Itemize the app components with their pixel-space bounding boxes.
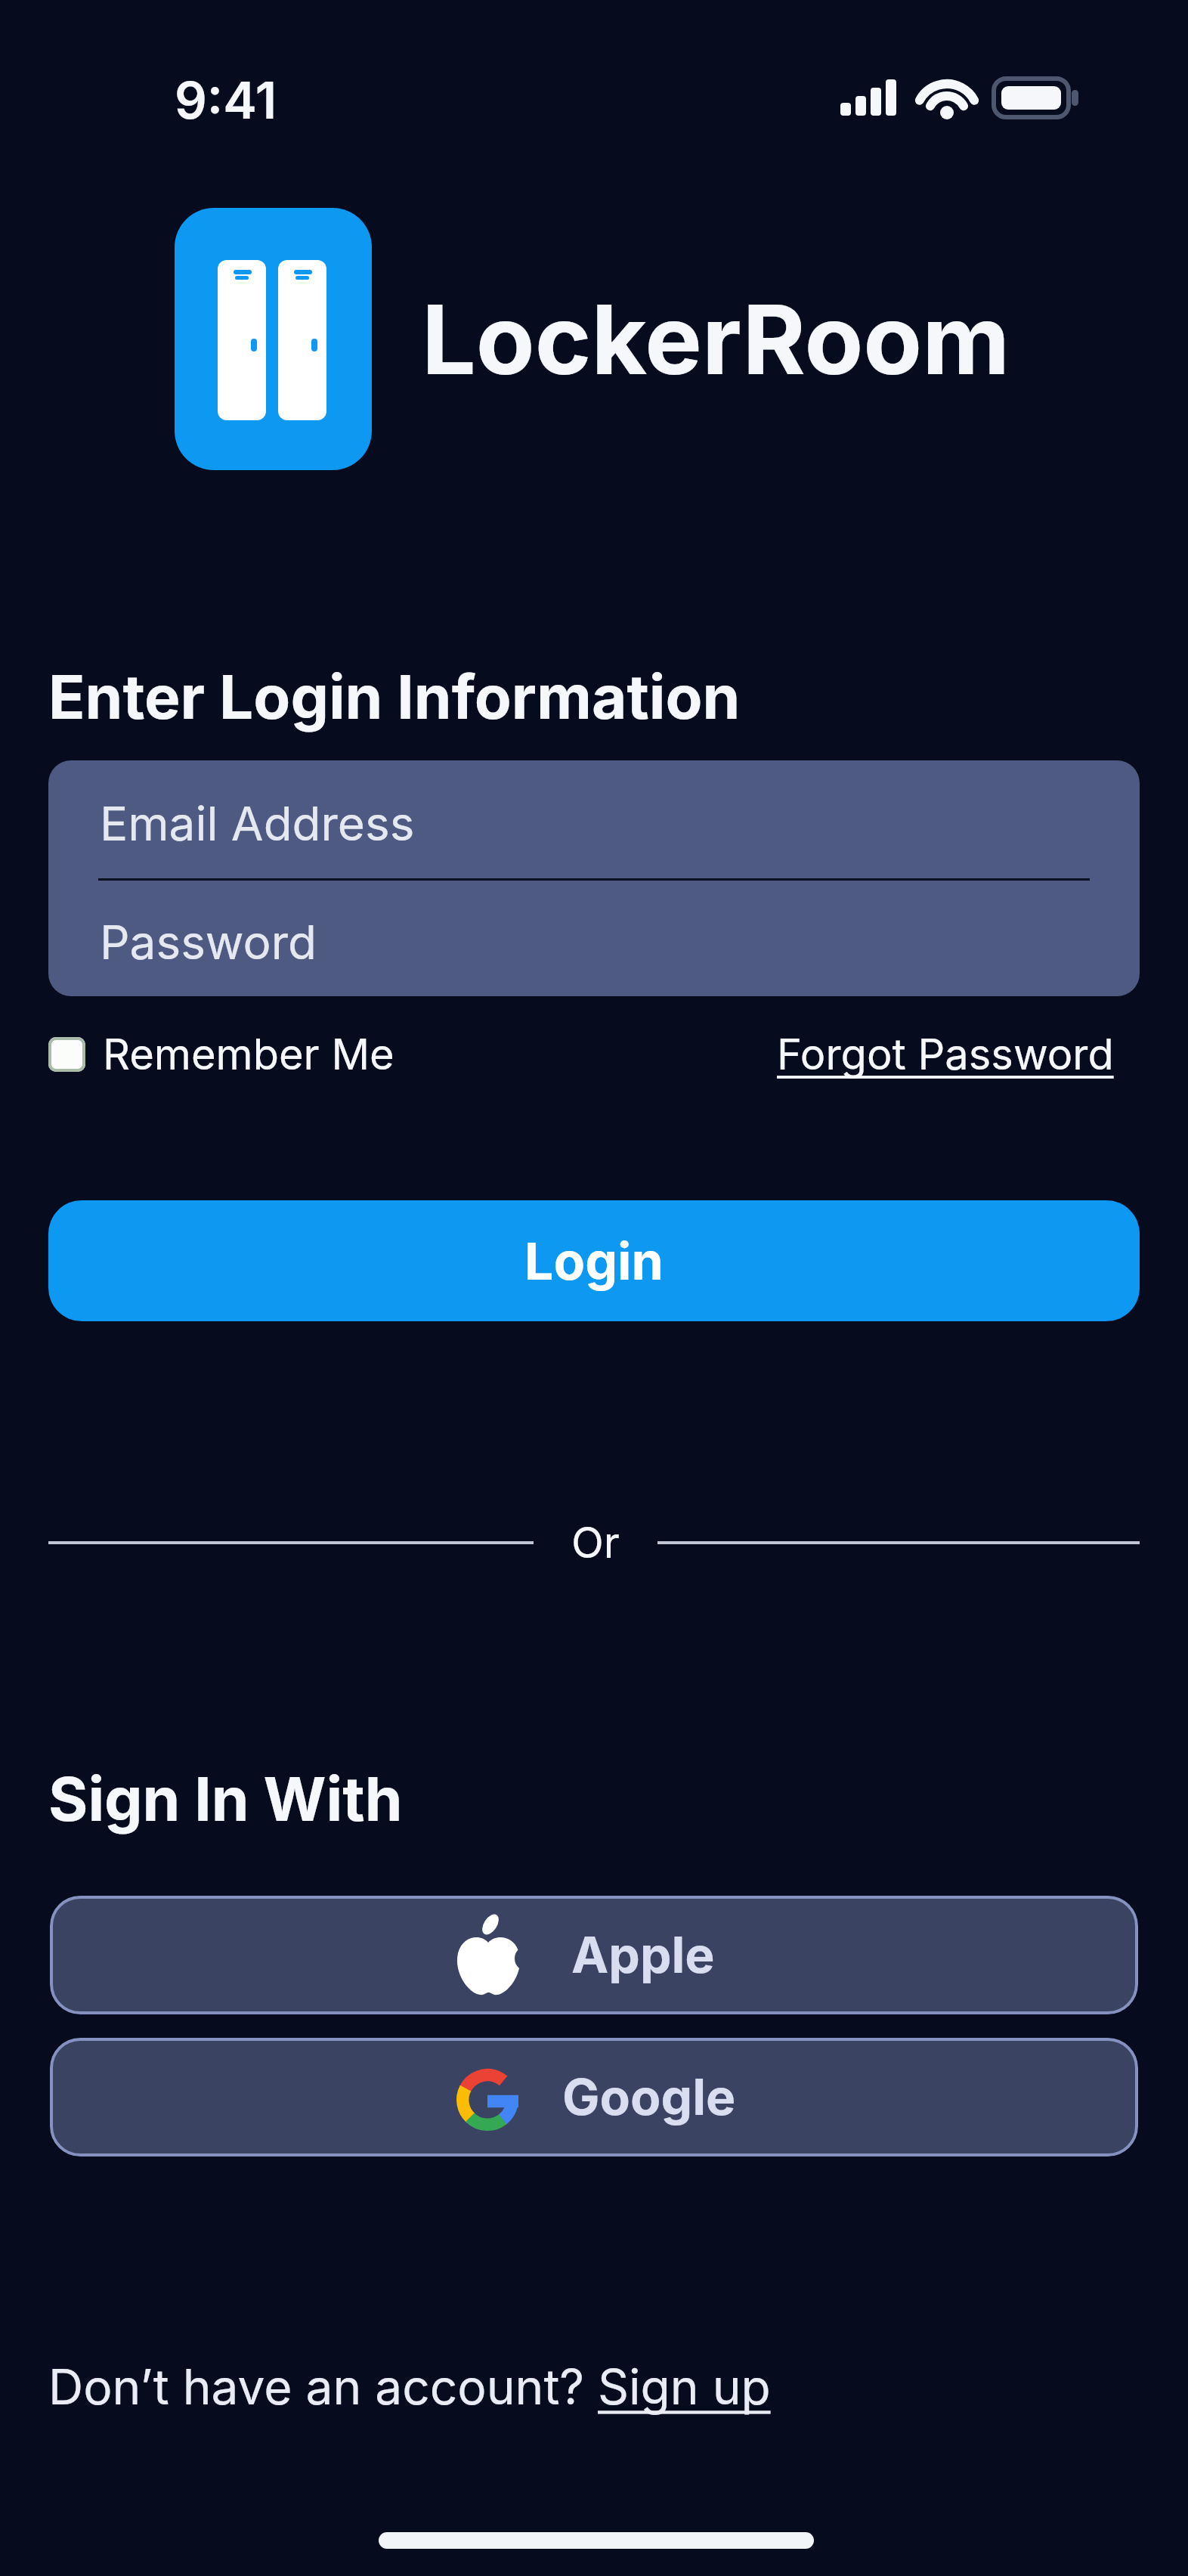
button[interactable]: Apple (50, 1896, 1138, 2014)
staticText: Sign In With (48, 1762, 403, 1835)
staticText: Forgot Password (777, 1029, 1114, 1080)
staticText: Login (524, 1230, 664, 1292)
staticText: Or (571, 1517, 620, 1568)
button[interactable]: Forgot Password (680, 1012, 1114, 1097)
staticText: Email Address (100, 795, 415, 852)
staticText: LockerRoom (422, 281, 1010, 398)
button[interactable]: Login (48, 1200, 1140, 1321)
staticText: Apple (571, 1924, 715, 1985)
staticText: Enter Login Information (48, 660, 741, 733)
staticText: Password (100, 914, 317, 971)
button[interactable]: Don’t have an account? Sign up (48, 2337, 880, 2435)
button[interactable] (48, 1037, 85, 1072)
staticText: Google (562, 2067, 736, 2127)
staticText: Remember Me (103, 1029, 394, 1080)
staticText: 9:41 (175, 70, 277, 131)
button[interactable]: Google (50, 2038, 1138, 2156)
staticText: Don’t have an account? Sign up (48, 2358, 771, 2416)
